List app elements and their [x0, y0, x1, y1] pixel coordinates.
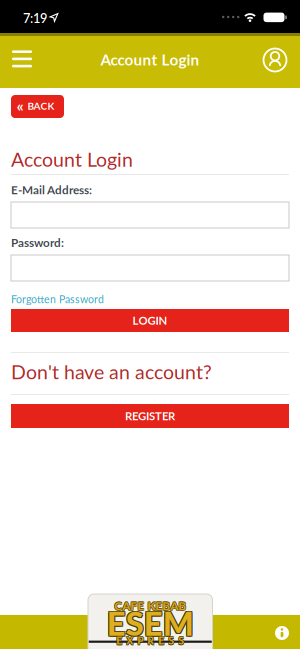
button[interactable] [11, 255, 289, 281]
staticText: ESEM [108, 603, 195, 642]
staticText: CAFE KEBAB [114, 599, 186, 613]
staticText: Don't have an account? [11, 360, 212, 383]
button[interactable] [11, 202, 289, 228]
staticText: 7:19 [23, 10, 47, 26]
button[interactable]: « [11, 95, 64, 118]
button[interactable]: LOGIN [11, 309, 289, 332]
staticText: Account Login [100, 50, 199, 69]
staticText: REGISTER [125, 409, 175, 423]
staticText: BACK [27, 100, 54, 112]
button[interactable] [12, 50, 32, 67]
staticText: ESEM [106, 603, 193, 642]
staticText: LOGIN [132, 314, 167, 327]
staticText: E X P R E S S [116, 634, 184, 646]
button[interactable]: REGISTER [11, 404, 289, 428]
staticText: E X P R E S S [117, 634, 185, 646]
staticText: Password: [11, 235, 64, 249]
staticText: CAFE KEBAB [115, 598, 187, 612]
staticText: ESEM [106, 604, 193, 644]
staticText: CAFE KEBAB [115, 599, 187, 613]
staticText: Account Login [11, 147, 133, 171]
staticText: ESEM [108, 604, 195, 644]
staticText: E X P R E S S [117, 635, 185, 647]
staticText: E X P R E S S [116, 634, 184, 647]
staticText: E-Mail Address: [11, 183, 92, 197]
staticText: E X P R E S S [116, 635, 184, 647]
staticText: ESEM [107, 603, 194, 643]
button[interactable]: Forgotten Password [11, 293, 104, 306]
button[interactable] [263, 48, 286, 71]
staticText: Forgotten Password [11, 293, 104, 306]
staticText: CAFE KEBAB [114, 598, 186, 613]
staticText: CAFE KEBAB [114, 598, 186, 612]
staticText: « [16, 96, 23, 115]
button[interactable] [275, 626, 289, 640]
